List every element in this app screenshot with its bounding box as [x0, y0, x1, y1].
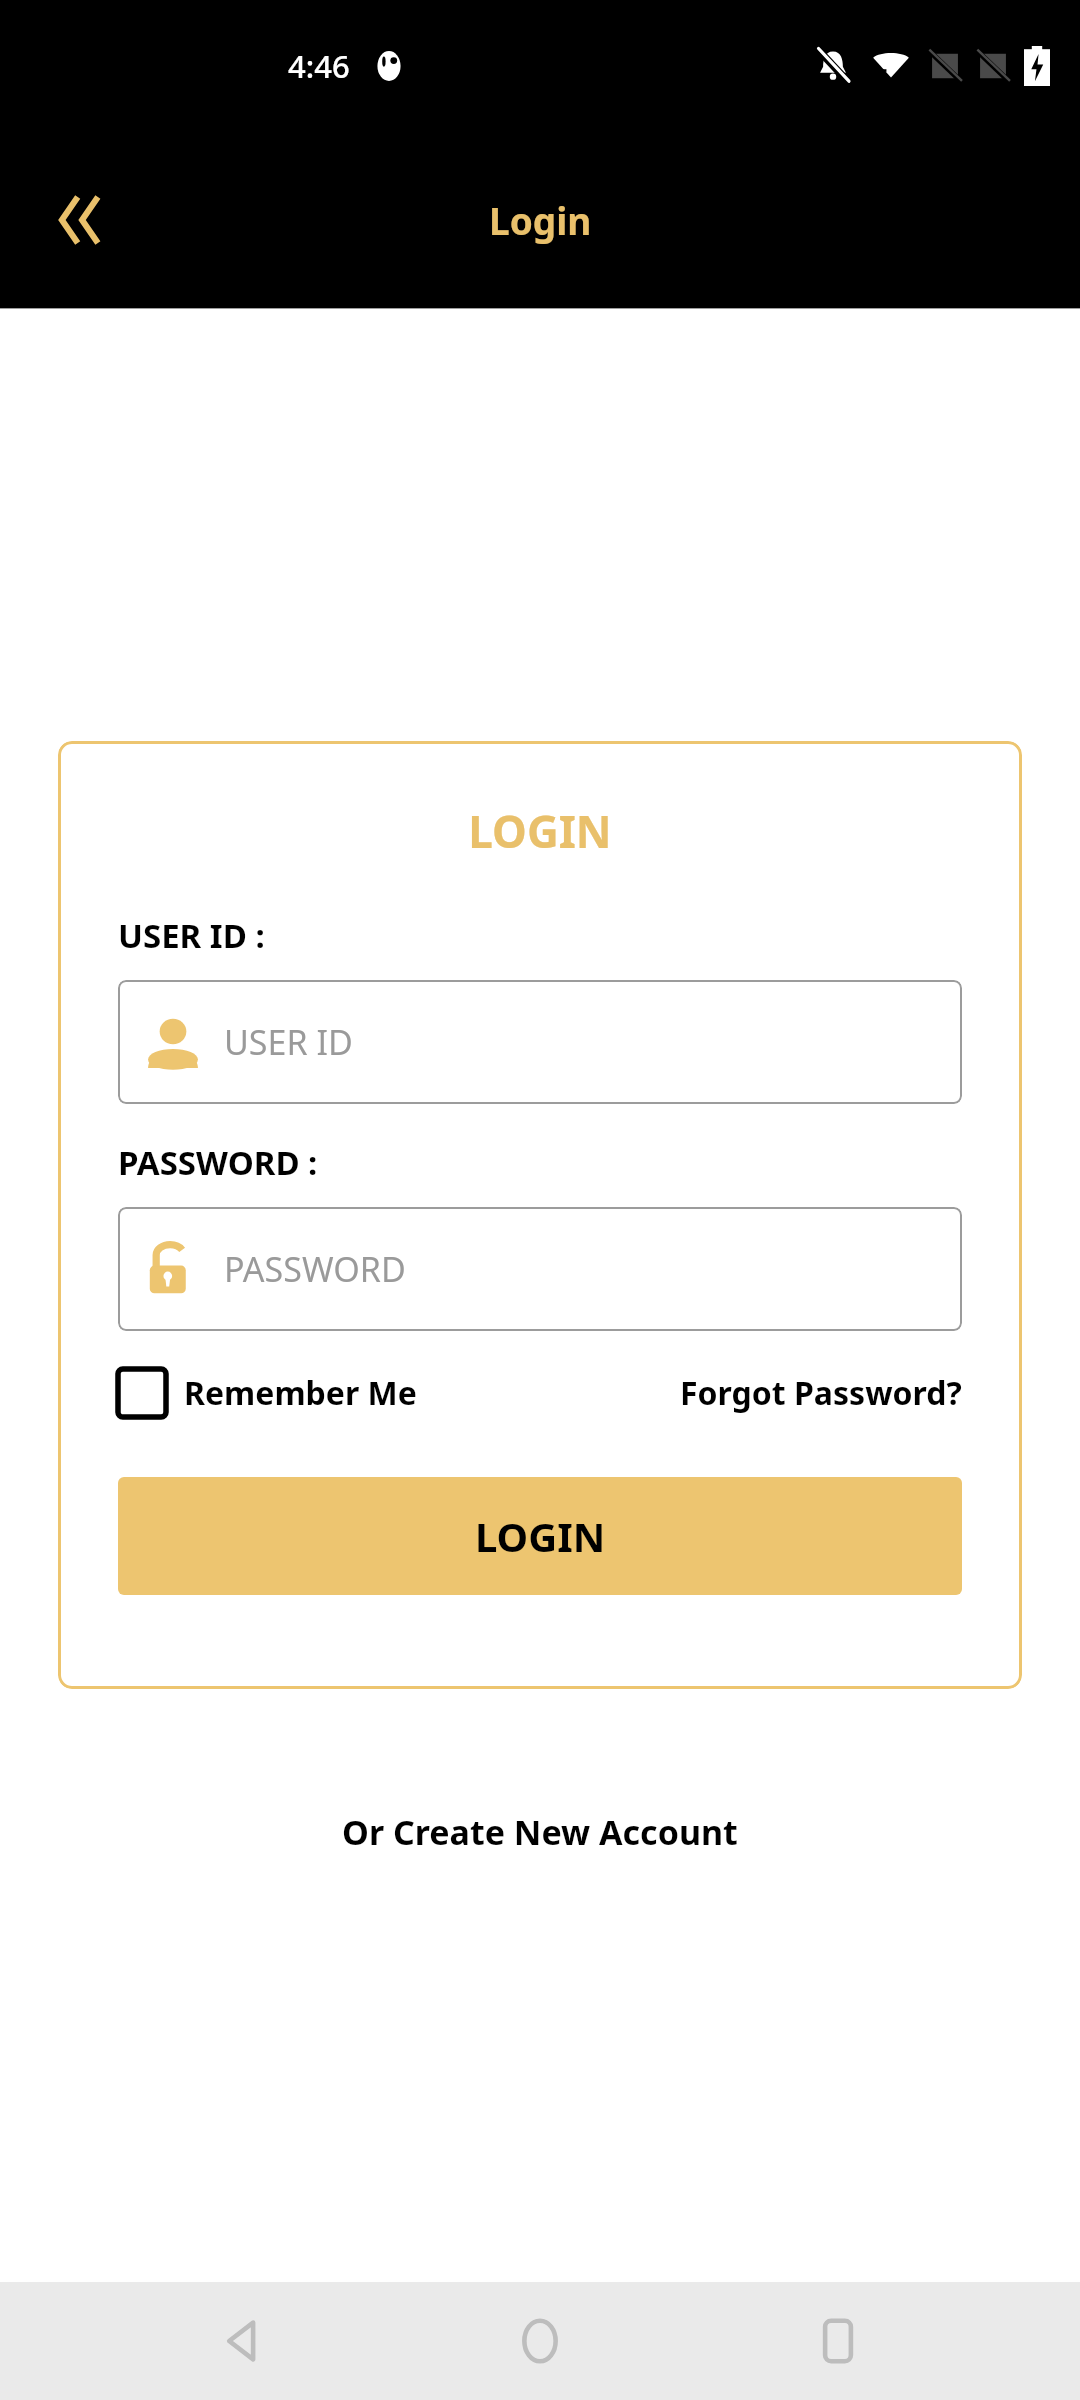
- staticText: Remember Me: [184, 1371, 417, 1415]
- button[interactable]: Recent apps: [783, 2286, 893, 2396]
- button[interactable]: Back: [22, 165, 132, 275]
- staticText: PASSWORD: [224, 1246, 406, 1292]
- button[interactable]: PASSWORD: [118, 1207, 962, 1331]
- button[interactable]: LOGIN: [118, 1477, 962, 1595]
- button[interactable]: Back: [188, 2286, 298, 2396]
- staticText: PASSWORD :: [118, 1140, 318, 1185]
- button[interactable]: Or Create New Account: [326, 1803, 754, 1861]
- staticText: Login: [489, 195, 592, 245]
- button[interactable]: Remember Me: [118, 1369, 417, 1417]
- staticText: 4:46: [288, 45, 350, 87]
- button[interactable]: Home: [485, 2286, 595, 2396]
- staticText: LOGIN: [118, 801, 962, 861]
- button[interactable]: Forgot Password?: [680, 1365, 962, 1421]
- button[interactable]: USER ID: [118, 980, 962, 1104]
- staticText: USER ID: [224, 1019, 353, 1065]
- staticText: LOGIN: [475, 1509, 606, 1563]
- staticText: USER ID :: [118, 913, 265, 958]
